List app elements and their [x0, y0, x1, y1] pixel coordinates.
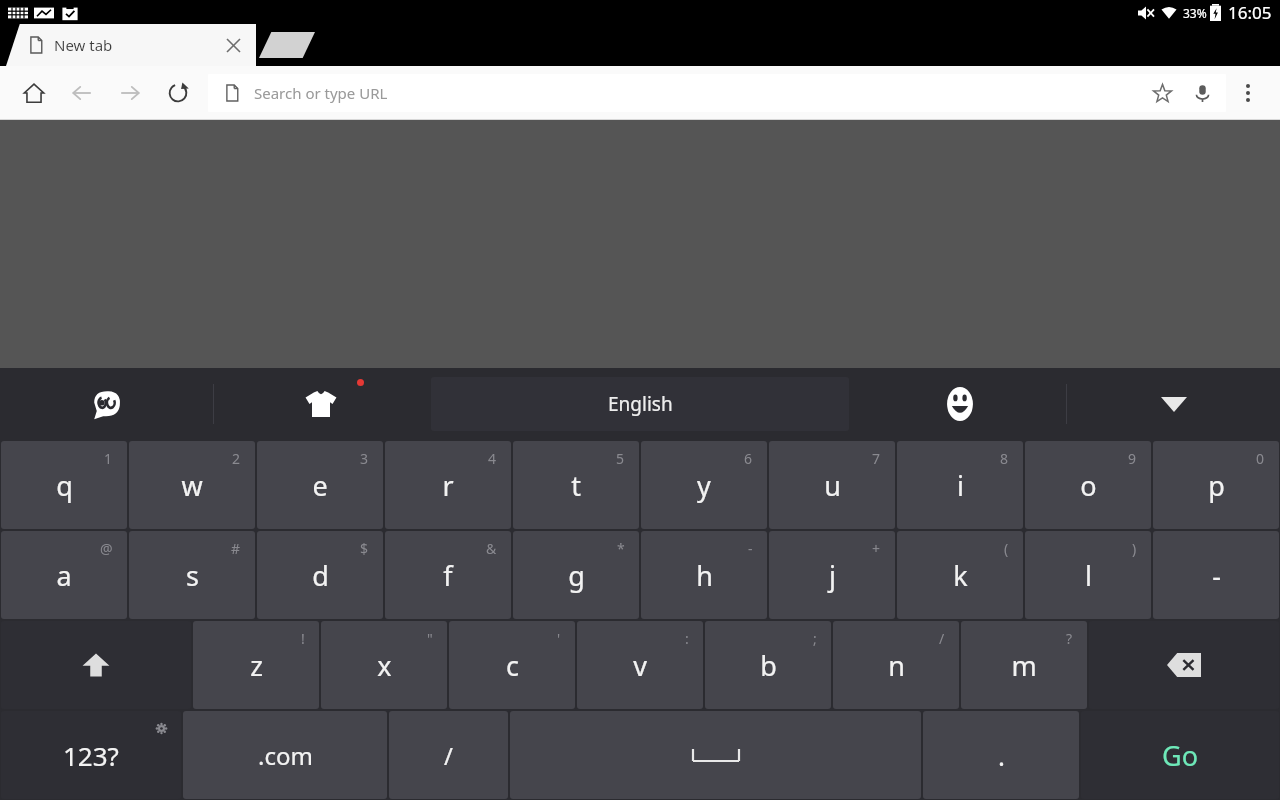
staticText: 33% [1183, 5, 1207, 21]
button[interactable]: s [129, 531, 255, 619]
button[interactable]: r [385, 441, 511, 529]
staticText: f [443, 557, 453, 594]
staticText: j [829, 557, 836, 594]
staticText: / [444, 739, 453, 772]
button[interactable]: m [961, 621, 1087, 709]
button[interactable]: c [449, 621, 575, 709]
button[interactable]: w [129, 441, 255, 529]
button[interactable]: y [641, 441, 767, 529]
staticText: h [696, 557, 713, 594]
button[interactable]: g [513, 531, 639, 619]
button[interactable]: o [1025, 441, 1151, 529]
staticText: 1 [104, 449, 113, 468]
button[interactable]: n [833, 621, 959, 709]
button[interactable]: 123? [1, 711, 181, 799]
button[interactable]: h [641, 531, 767, 619]
button[interactable]: t [513, 441, 639, 529]
button[interactable]: a [1, 531, 127, 619]
button[interactable]: . [923, 711, 1079, 799]
button[interactable]: Home [10, 69, 58, 117]
staticText: / [939, 629, 945, 648]
button[interactable]: Emoji [853, 368, 1066, 440]
staticText: n [888, 647, 905, 684]
staticText: New tab [54, 35, 113, 55]
button[interactable]: x [321, 621, 447, 709]
staticText: 8 [1000, 449, 1009, 468]
staticText: ! [301, 629, 305, 648]
staticText: ; [813, 629, 817, 648]
staticText: - [1212, 557, 1221, 594]
staticText: - [748, 539, 753, 558]
button[interactable]: z [193, 621, 319, 709]
button[interactable]: Backspace [1089, 621, 1279, 709]
button[interactable]: q [1, 441, 127, 529]
staticText: 7 [872, 449, 881, 468]
staticText: m [1011, 647, 1037, 684]
button[interactable]: l [1025, 531, 1151, 619]
staticText: x [377, 647, 392, 684]
staticText: 6 [744, 449, 753, 468]
staticText: @ [100, 539, 113, 558]
button[interactable]: Bookmark [1142, 74, 1182, 112]
staticText: ? [1066, 629, 1073, 648]
staticText: # [231, 539, 241, 558]
staticText: l [1085, 557, 1092, 594]
button[interactable]: i [897, 441, 1023, 529]
button[interactable]: j [769, 531, 895, 619]
staticText: z [250, 647, 263, 684]
staticText: e [312, 467, 328, 504]
staticText: $ [360, 539, 369, 558]
button[interactable]: English [431, 377, 849, 431]
button[interactable]: b [705, 621, 831, 709]
staticText: g [568, 557, 585, 594]
staticText: t [571, 467, 581, 504]
staticText: + [872, 539, 881, 558]
staticText: r [442, 467, 454, 504]
button[interactable]: / [389, 711, 508, 799]
staticText: 123? [63, 738, 119, 773]
button[interactable]: Space [510, 711, 921, 799]
button[interactable]: d [257, 531, 383, 619]
button[interactable]: GO Keyboard [0, 368, 213, 440]
button[interactable]: Reload [154, 69, 202, 117]
staticText: b [760, 647, 777, 684]
staticText: q [56, 467, 73, 504]
button[interactable]: k [897, 531, 1023, 619]
button[interactable]: Back [58, 69, 106, 117]
button[interactable]: Search or type URL [208, 74, 1226, 112]
button[interactable]: New tab [259, 32, 315, 58]
button[interactable]: Voice search [1182, 74, 1222, 112]
button[interactable]: f [385, 531, 511, 619]
button[interactable]: Shift [1, 621, 191, 709]
button[interactable]: New tab [6, 24, 256, 66]
staticText: 4 [488, 449, 497, 468]
staticText: y [697, 467, 711, 504]
button[interactable]: u [769, 441, 895, 529]
staticText: * [617, 539, 625, 558]
staticText: Search or type URL [254, 83, 1142, 103]
staticText: 0 [1256, 449, 1265, 468]
staticText: English [608, 391, 673, 417]
staticText: c [506, 647, 519, 684]
staticText: Go [1162, 737, 1198, 774]
button[interactable]: Hide keyboard [1067, 368, 1280, 440]
staticText: s [186, 557, 199, 594]
button[interactable]: Forward [106, 69, 154, 117]
button[interactable]: p [1153, 441, 1279, 529]
staticText: 5 [616, 449, 625, 468]
button[interactable]: Go [1081, 711, 1279, 799]
staticText: . [998, 738, 1005, 773]
staticText: v [633, 647, 647, 684]
button[interactable]: Close tab [220, 32, 246, 58]
button[interactable]: Themes [214, 368, 427, 440]
button[interactable]: - [1153, 531, 1279, 619]
staticText: i [957, 467, 964, 504]
button[interactable]: e [257, 441, 383, 529]
staticText: a [56, 557, 72, 594]
button[interactable]: v [577, 621, 703, 709]
staticText: 9 [1128, 449, 1137, 468]
button[interactable]: .com [183, 711, 387, 799]
staticText: 3 [360, 449, 369, 468]
staticText: .com [258, 739, 313, 772]
button[interactable]: More options [1226, 71, 1270, 115]
